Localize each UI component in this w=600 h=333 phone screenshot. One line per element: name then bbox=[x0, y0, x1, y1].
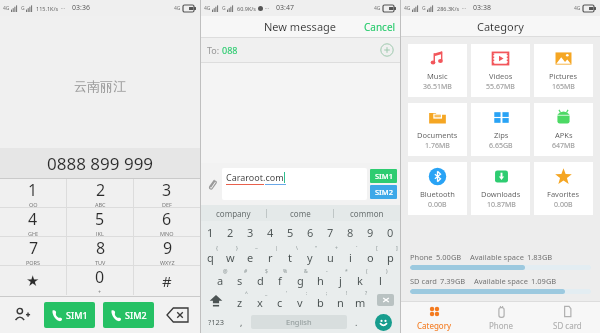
staticText: p bbox=[387, 250, 394, 265]
staticText: : bbox=[306, 290, 308, 297]
staticText: v bbox=[297, 295, 303, 310]
button[interactable]: 7 bbox=[0, 237, 66, 265]
button[interactable]: ] bbox=[380, 244, 400, 267]
button[interactable]: Videos bbox=[471, 44, 530, 97]
button[interactable]: Add contact bbox=[0, 297, 44, 333]
button[interactable]: Shift bbox=[201, 289, 230, 311]
button[interactable]: ) bbox=[370, 267, 390, 289]
button[interactable]: 0 bbox=[380, 221, 400, 244]
button[interactable]: SD card bbox=[534, 302, 600, 333]
staticText: 088 bbox=[222, 44, 238, 56]
button[interactable]: ` bbox=[340, 244, 360, 267]
button[interactable]: Bluetooth bbox=[408, 162, 467, 215]
button[interactable]: $ bbox=[250, 267, 270, 289]
staticText: Available space bbox=[474, 276, 528, 286]
button[interactable]: Favorites bbox=[534, 162, 593, 215]
button[interactable]: 5 bbox=[67, 208, 133, 236]
button[interactable]: @ bbox=[210, 267, 230, 289]
staticText: ?123 bbox=[208, 317, 225, 327]
button[interactable]: 7 bbox=[320, 221, 340, 244]
button[interactable]: company bbox=[201, 205, 266, 221]
button[interactable]: 0 bbox=[67, 266, 133, 295]
button[interactable]: ★ bbox=[0, 266, 66, 295]
button[interactable]: & bbox=[290, 267, 310, 289]
button[interactable]: , bbox=[232, 311, 251, 333]
button[interactable]: 9 bbox=[360, 221, 380, 244]
button[interactable]: ^ bbox=[230, 289, 250, 311]
button[interactable]: Downloads bbox=[471, 162, 530, 215]
staticText: \ bbox=[296, 245, 298, 252]
staticText: . bbox=[355, 316, 358, 328]
button[interactable]: Attach bbox=[204, 176, 220, 192]
button[interactable]: " bbox=[300, 244, 320, 267]
staticText: 10.87MB bbox=[487, 200, 516, 210]
button[interactable]: SIM2 bbox=[370, 185, 397, 199]
staticText: ··· bbox=[61, 5, 66, 12]
button[interactable]: : bbox=[290, 289, 310, 311]
button[interactable]: ! bbox=[330, 289, 350, 311]
button[interactable]: Music bbox=[408, 44, 467, 97]
staticText: SD card bbox=[553, 320, 582, 331]
button[interactable]: Cararoot.com bbox=[222, 168, 367, 200]
staticText: 1 bbox=[28, 179, 38, 201]
button[interactable]: 3 bbox=[240, 221, 260, 244]
button[interactable]: APKs bbox=[534, 103, 593, 156]
button[interactable]: { bbox=[201, 244, 220, 267]
staticText: Phone bbox=[410, 252, 433, 262]
button[interactable]: SIM2 bbox=[103, 302, 154, 328]
button[interactable]: # bbox=[134, 266, 200, 295]
button[interactable]: | bbox=[260, 244, 280, 267]
button[interactable]: 5 bbox=[280, 221, 300, 244]
button[interactable]: + bbox=[320, 244, 340, 267]
button[interactable]: 1 bbox=[201, 221, 220, 244]
button[interactable]: 2 bbox=[220, 221, 240, 244]
button[interactable]: 4 bbox=[0, 208, 66, 236]
button[interactable]: ~ bbox=[240, 244, 260, 267]
button[interactable]: } bbox=[220, 244, 240, 267]
button[interactable]: Category bbox=[401, 302, 468, 333]
button[interactable]: \ bbox=[280, 244, 300, 267]
button[interactable]: ; bbox=[310, 289, 330, 311]
button[interactable]: ( bbox=[350, 267, 370, 289]
button[interactable]: English bbox=[251, 315, 347, 329]
button[interactable]: * bbox=[330, 267, 350, 289]
button[interactable]: ? bbox=[350, 289, 370, 311]
button[interactable]: Backspace bbox=[370, 289, 400, 311]
staticText: d bbox=[257, 273, 264, 288]
button[interactable]: Emoji bbox=[366, 311, 400, 333]
button[interactable]: Documents bbox=[408, 103, 467, 156]
button[interactable]: come bbox=[267, 205, 333, 221]
button[interactable]: # bbox=[230, 267, 250, 289]
button[interactable]: 8 bbox=[340, 221, 360, 244]
button[interactable]: 3 bbox=[134, 179, 200, 207]
button[interactable]: 8 bbox=[67, 237, 133, 265]
button[interactable]: [ bbox=[360, 244, 380, 267]
button[interactable]: - bbox=[310, 267, 330, 289]
button[interactable]: 9 bbox=[134, 237, 200, 265]
staticText: Available space bbox=[470, 252, 524, 262]
button[interactable]: SIM1 bbox=[44, 302, 95, 328]
button[interactable]: 4 bbox=[260, 221, 280, 244]
button[interactable]: 6 bbox=[134, 208, 200, 236]
button[interactable]: 1 bbox=[0, 179, 66, 207]
staticText: SIM1 bbox=[375, 171, 393, 181]
button[interactable]: Phone bbox=[468, 302, 534, 333]
button[interactable]: 6 bbox=[300, 221, 320, 244]
staticText: } bbox=[236, 245, 238, 252]
staticText: ~ bbox=[255, 245, 258, 252]
button[interactable]: % bbox=[270, 267, 290, 289]
button[interactable]: SIM1 bbox=[370, 169, 397, 183]
button[interactable]: 2 bbox=[67, 179, 133, 207]
button[interactable]: _ bbox=[250, 289, 270, 311]
button[interactable]: Pictures bbox=[534, 44, 593, 97]
button[interactable]: . bbox=[347, 311, 366, 333]
button[interactable]: Delete bbox=[154, 297, 200, 333]
staticText: j bbox=[339, 273, 342, 288]
button[interactable]: ?123 bbox=[201, 311, 232, 333]
button[interactable]: Add recipient bbox=[380, 43, 394, 57]
staticText: 55.67MB bbox=[486, 82, 515, 92]
button[interactable]: Zips bbox=[471, 103, 530, 156]
button[interactable]: Cancel bbox=[364, 20, 396, 34]
button[interactable]: ' bbox=[270, 289, 290, 311]
button[interactable]: common bbox=[334, 205, 400, 221]
